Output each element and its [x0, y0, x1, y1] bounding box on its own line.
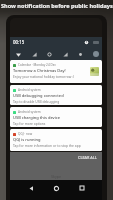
button[interactable]: QGJ · now: [10, 129, 102, 151]
button[interactable]: Quick setting: [46, 51, 52, 57]
staticText: Skype: [51, 174, 61, 179]
staticText: USB charging this device: [13, 115, 61, 120]
staticText: 00:15: [13, 39, 25, 45]
staticText: Android system: [18, 88, 41, 92]
button[interactable]: Home: [51, 183, 61, 193]
other: Battery: [93, 41, 99, 44]
button[interactable]: CLEAR ALL: [77, 154, 98, 161]
button[interactable]: Quick setting: [77, 51, 83, 57]
staticText: USB debugging connected: [13, 93, 64, 98]
staticText: Calendar · Monday 24 Dec: [18, 63, 56, 67]
staticText: QGJ is running: [13, 137, 41, 142]
button[interactable]: Quick setting: [62, 51, 68, 57]
button[interactable]: Alarm: [84, 40, 89, 45]
staticText: Show notification before public holidays: [1, 2, 113, 10]
staticText: CLEAR ALL: [78, 155, 97, 160]
staticText: Tap for more information or to stop the …: [13, 143, 81, 147]
button[interactable]: Quick setting: [15, 51, 21, 57]
staticText: Enjoy your national holiday tomorrow :): [13, 74, 74, 78]
button[interactable]: Recents: [77, 183, 87, 193]
button[interactable]: Calendar · Monday 24 Dec: [10, 60, 102, 83]
button[interactable]: Account: [93, 51, 99, 57]
staticText: Tomorrow a Christmas Day!: [13, 68, 66, 73]
staticText: Android system: [18, 110, 41, 114]
staticText: Tap to disable USB debugging: [13, 99, 60, 103]
staticText: QGJ · now: [18, 132, 33, 136]
button[interactable]: Quick setting: [31, 51, 37, 57]
button[interactable]: Android system: [10, 107, 102, 127]
button[interactable]: Android system: [10, 85, 102, 105]
button[interactable]: Back: [26, 183, 36, 193]
staticText: Tap for more options: [13, 121, 46, 125]
